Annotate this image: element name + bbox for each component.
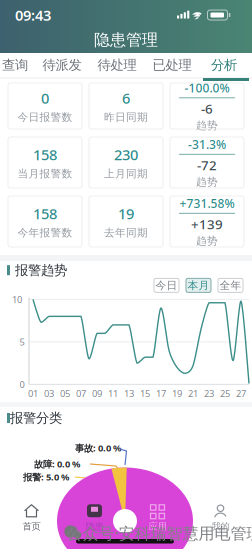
staticText: -31.3% (188, 136, 226, 152)
button[interactable]: 全年 (218, 278, 243, 292)
staticText: 上月同期 (104, 167, 148, 180)
staticText: 0 (41, 88, 49, 108)
staticText: 19 (118, 204, 134, 223)
staticText: 21 (188, 387, 198, 400)
button[interactable]: 我的 (189, 496, 252, 540)
staticText: 已处理 (152, 57, 191, 73)
staticText: 01 (28, 387, 38, 400)
staticText: -72 (197, 156, 217, 174)
staticText: 当月报警数 (17, 167, 72, 180)
staticText: 03 (44, 387, 54, 400)
staticText: 隐患管理 (94, 30, 158, 50)
staticText: -100.0% (184, 80, 229, 96)
staticText: 首页 (22, 521, 40, 532)
staticText: 27 (236, 387, 246, 400)
staticText: 公众号·安科瑞智慧用电管理 (66, 522, 252, 544)
staticText: 待派发 (42, 57, 81, 73)
button[interactable]: 已处理 (148, 52, 196, 77)
button[interactable]: 分析 (200, 52, 248, 77)
staticText: 查询 (2, 57, 28, 73)
staticText: 事故: 0.0 % (75, 442, 121, 454)
staticText: 5 (19, 336, 24, 348)
staticText: 09:43 (15, 5, 51, 25)
staticText: 158 (33, 145, 57, 164)
staticText: 10 (12, 293, 22, 306)
staticText: 25 (220, 387, 230, 400)
staticText: 今日报警数 (17, 111, 72, 124)
staticText: 07 (76, 387, 86, 400)
staticText: 158 (33, 204, 57, 223)
button[interactable]: 待处理 (93, 52, 141, 77)
staticText: 趋势 (196, 119, 218, 132)
staticText: 05 (60, 387, 70, 400)
staticText: 故障: 0.0 % (34, 458, 80, 470)
staticText: 17 (156, 387, 166, 400)
button[interactable]: 本月 (186, 278, 211, 292)
staticText: 我的 (211, 521, 229, 532)
staticText: +139 (191, 215, 223, 233)
button[interactable]: 今日 (154, 278, 179, 292)
staticText: 去年同期 (104, 226, 148, 239)
staticText: 本月 (187, 279, 209, 292)
button[interactable]: 待派发 (38, 52, 86, 77)
staticText: 19 (172, 387, 182, 400)
staticText: 今年报警数 (17, 226, 72, 239)
staticText: 报警趋势 (15, 262, 67, 278)
staticText: 待处理 (97, 57, 136, 73)
staticText: -6 (201, 100, 213, 117)
staticText: 今日 (155, 279, 177, 292)
staticText: 13 (124, 387, 134, 400)
staticText: 报警分类 (10, 410, 62, 426)
staticText: 趋势 (196, 234, 218, 248)
staticText: 23 (204, 387, 214, 400)
staticText: 230 (114, 145, 138, 164)
staticText: +731.58% (179, 195, 234, 211)
staticText: 11 (108, 387, 118, 400)
staticText: 15 (140, 387, 150, 400)
button[interactable]: 应用 (126, 496, 189, 540)
staticText: 0 (19, 378, 24, 391)
staticText: 趋势 (196, 175, 218, 189)
button[interactable]: 首页 (0, 496, 63, 540)
staticText: 应用 (148, 521, 166, 532)
staticText: 分析 (211, 57, 237, 73)
staticText: 全年 (219, 279, 241, 292)
staticText: 昨日同期 (104, 111, 148, 124)
staticText: 6 (122, 88, 130, 108)
staticText: 报警: 5.0 % (23, 471, 69, 483)
button[interactable]: 查询 (0, 52, 39, 77)
staticText: 09 (92, 387, 102, 400)
staticText: 隐患 (85, 521, 103, 532)
button[interactable]: 隐患 (63, 496, 126, 540)
